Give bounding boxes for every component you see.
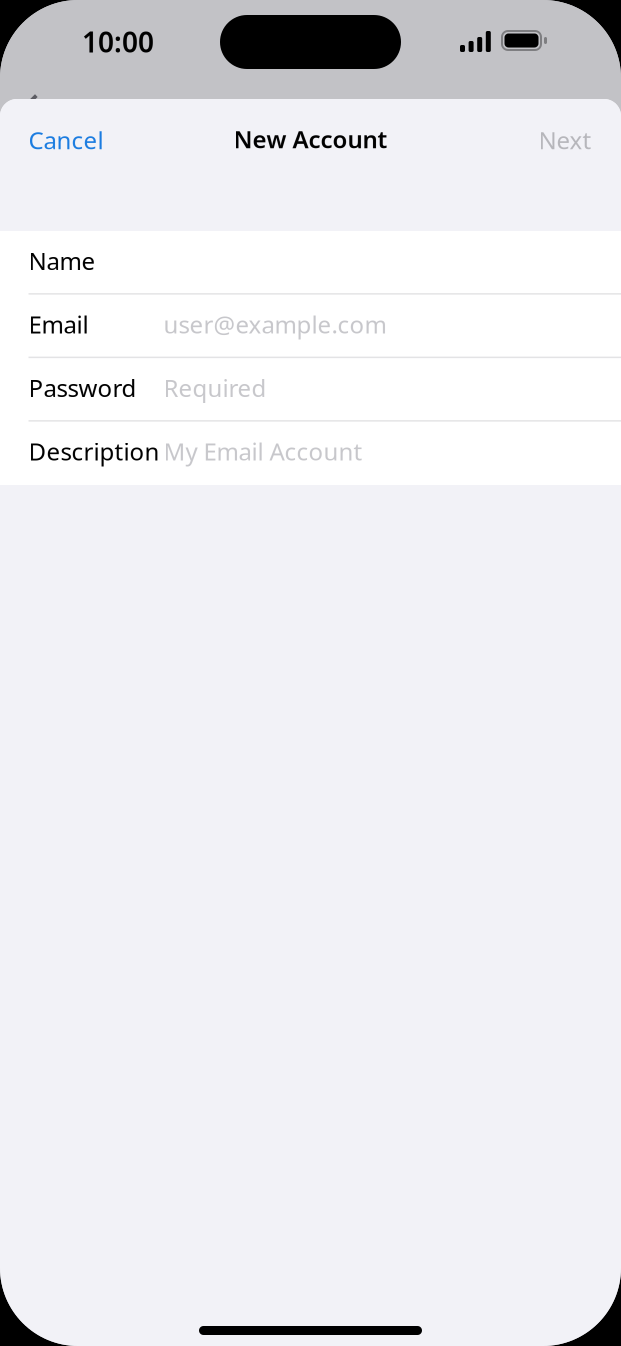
button[interactable]: Next [471,114,621,167]
staticText: Name [28,245,95,277]
staticText: 10:00 [82,23,154,60]
button[interactable]: Cancel [0,114,150,167]
staticText: Required [163,372,266,404]
staticText: Cancel [28,124,103,156]
button[interactable]: Name [0,231,621,294]
button[interactable]: Description [0,421,621,485]
button[interactable]: Email [0,294,621,358]
staticText: Next [538,124,591,156]
staticText: New Account [233,123,387,155]
staticText: My Email Account [163,435,362,467]
staticText: Description [28,435,159,467]
staticText: Email [28,308,88,340]
button[interactable]: Password [0,358,621,421]
staticText: user@example.com [163,308,386,340]
staticText: Password [28,372,136,404]
